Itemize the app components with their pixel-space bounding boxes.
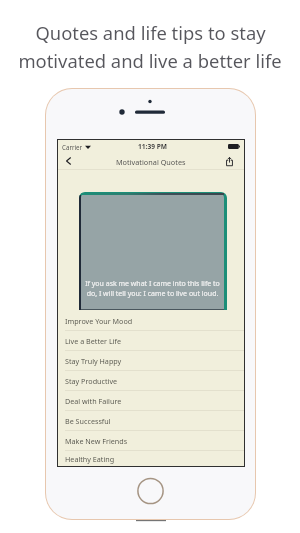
staticText: Deal with Failure xyxy=(65,396,122,406)
button[interactable]: Deal with Failure xyxy=(58,391,244,411)
button[interactable]: Be Successful xyxy=(58,411,244,431)
button[interactable]: Back xyxy=(60,154,76,170)
staticText: Make New Friends xyxy=(65,436,128,446)
button[interactable]: Live a Better Life xyxy=(58,331,244,351)
button[interactable]: Stay Productive xyxy=(58,371,244,391)
staticText: Be Successful xyxy=(65,416,111,426)
button[interactable]: Stay Truly Happy xyxy=(58,351,244,371)
staticText: motivated and live a better life xyxy=(18,48,282,73)
staticText: 11:39 PM xyxy=(138,142,167,151)
button[interactable]: Share xyxy=(223,155,236,168)
staticText: Stay Truly Happy xyxy=(65,356,122,366)
staticText: Stay Productive xyxy=(65,376,118,386)
staticText: Healthy Eating xyxy=(65,454,115,464)
staticText: Motivational Quotes xyxy=(116,157,186,167)
staticText: Improve Your Mood xyxy=(65,316,133,326)
button[interactable]: Make New Friends xyxy=(58,431,244,451)
staticText: Live a Better Life xyxy=(65,336,122,346)
button[interactable]: Improve Your Mood xyxy=(58,311,244,331)
staticText: Carrier xyxy=(62,143,83,151)
button[interactable]: Healthy Eating xyxy=(58,451,244,466)
staticText: If you ask me what I came into this life… xyxy=(85,279,220,299)
staticText: Quotes and life tips to stay xyxy=(35,20,266,45)
